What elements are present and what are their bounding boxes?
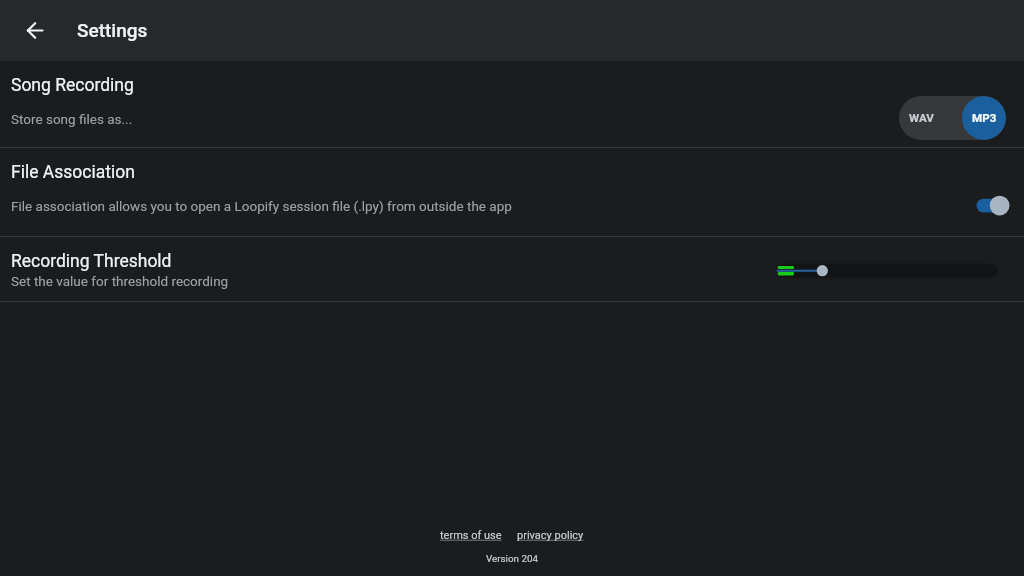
staticText: Song Recording (11, 75, 134, 96)
staticText: File Association (11, 162, 135, 183)
button[interactable]: Back (10, 6, 59, 55)
button[interactable]: Recording threshold slider (770, 252, 1010, 288)
button[interactable]: privacy policy (517, 529, 584, 542)
button[interactable]: terms of use (440, 529, 502, 542)
staticText: Version 204 (486, 553, 538, 564)
button[interactable]: WAV (899, 96, 1006, 140)
staticText: Set the value for threshold recording (11, 273, 229, 289)
staticText: WAV (909, 111, 934, 125)
staticText: Settings (77, 19, 148, 41)
staticText: privacy policy (517, 529, 584, 542)
staticText: MP3 (972, 111, 997, 125)
staticText: terms of use (440, 529, 502, 542)
staticText: File association allows you to open a Lo… (11, 198, 512, 214)
button[interactable]: File Association (0, 148, 1024, 236)
staticText: Store song files as... (11, 111, 133, 127)
button[interactable]: File association toggle (966, 181, 1014, 230)
button[interactable]: Song Recording (0, 61, 1024, 147)
staticText: Recording Threshold (11, 251, 172, 272)
button[interactable]: Recording Threshold (0, 237, 1024, 301)
